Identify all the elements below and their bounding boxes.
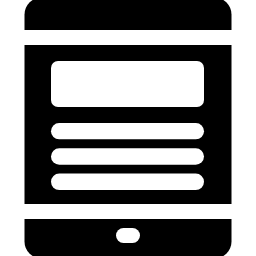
button[interactable]: Header card: [51, 61, 204, 107]
button[interactable]: Content line 1: [51, 123, 204, 139]
button[interactable]: Content line 3: [51, 174, 204, 191]
button[interactable]: Content line 2: [51, 148, 204, 165]
button[interactable]: Home: [116, 228, 140, 243]
